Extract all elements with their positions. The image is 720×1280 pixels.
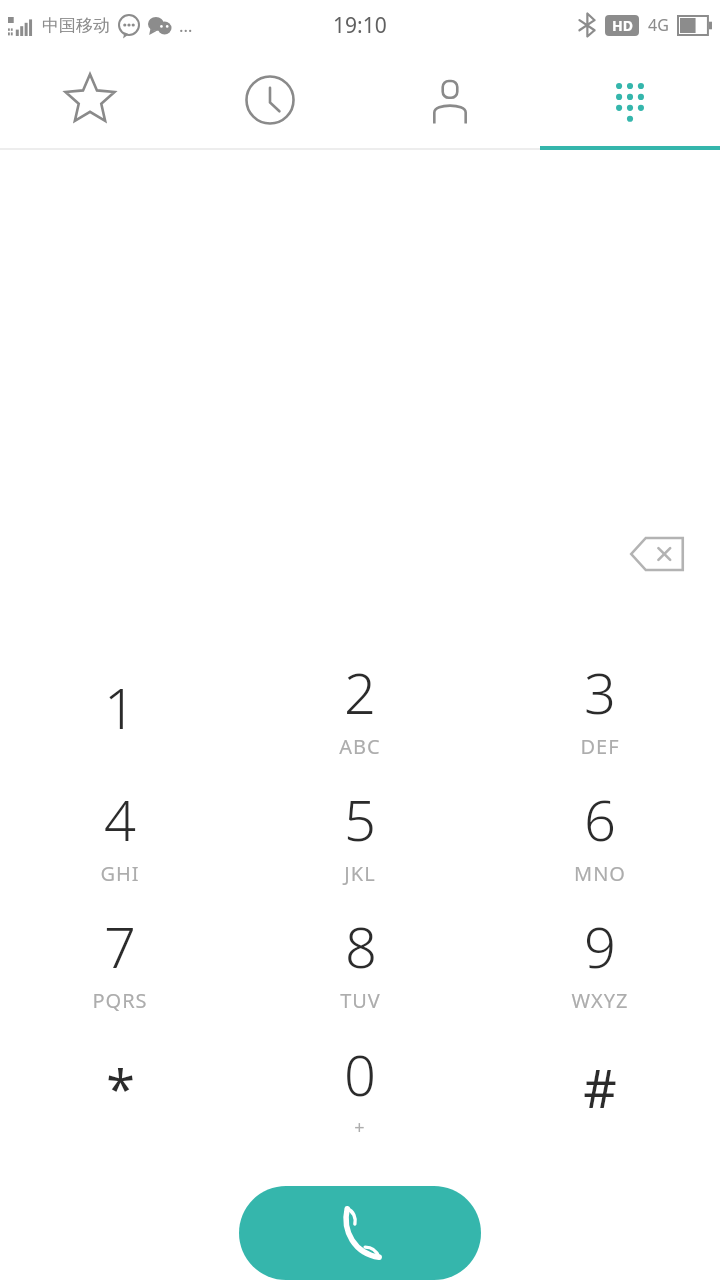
button[interactable]: 7 [0, 897, 240, 1024]
staticText: 5 [344, 781, 376, 857]
button[interactable]: 9 [480, 897, 720, 1024]
button[interactable]: 2 [240, 643, 480, 770]
staticText: * [106, 1052, 135, 1123]
staticText: JKL [344, 860, 376, 887]
staticText: # [583, 1052, 617, 1123]
button[interactable]: 3 [480, 643, 720, 770]
staticText: 3 [584, 654, 616, 730]
staticText: 2 [344, 654, 376, 730]
button[interactable]: 6 [480, 770, 720, 897]
button[interactable]: Backspace [622, 523, 692, 585]
button[interactable]: 0 [240, 1024, 480, 1151]
staticText: 0 [344, 1036, 376, 1112]
button[interactable]: Favorites [0, 50, 180, 150]
staticText: 8 [345, 908, 377, 984]
staticText: 1 [104, 669, 136, 745]
button[interactable]: Contacts [360, 50, 540, 150]
staticText: DEF [580, 733, 620, 760]
staticText: 4 [104, 781, 136, 857]
staticText: MNO [574, 860, 626, 887]
staticText: 7 [104, 908, 136, 984]
staticText: WXYZ [571, 987, 629, 1014]
staticText: 9 [584, 908, 616, 984]
button[interactable]: Recents [180, 50, 360, 150]
staticText: … [179, 14, 193, 37]
staticText: PQRS [92, 987, 148, 1014]
button[interactable]: * [0, 1024, 240, 1151]
button[interactable]: 1 [0, 643, 240, 770]
button[interactable]: Call [239, 1186, 481, 1280]
staticText: GHI [100, 860, 140, 887]
staticText: 中国移动 [42, 15, 110, 36]
staticText: TUV [340, 987, 381, 1014]
button[interactable]: Dialpad [540, 50, 720, 150]
staticText: 4G [648, 14, 669, 36]
button[interactable]: # [480, 1024, 720, 1151]
button[interactable]: 4 [0, 770, 240, 897]
button[interactable]: 8 [240, 897, 480, 1024]
staticText: 19:10 [333, 11, 387, 40]
staticText: HD [612, 16, 633, 35]
staticText: ABC [339, 733, 381, 760]
button[interactable]: 5 [240, 770, 480, 897]
staticText: + [354, 1115, 366, 1140]
staticText: 6 [584, 781, 616, 857]
